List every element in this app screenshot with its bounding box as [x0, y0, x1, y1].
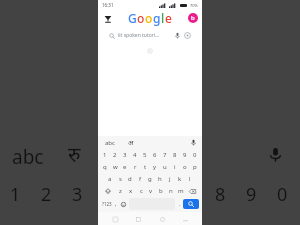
button[interactable]: 3 [120, 149, 130, 161]
button[interactable]: 6 [150, 149, 160, 161]
button[interactable]: c [136, 185, 146, 197]
staticText: 1 [10, 182, 21, 207]
button[interactable]: 7 [160, 149, 170, 161]
staticText: 4 [133, 151, 137, 159]
button[interactable]: Google Account [188, 13, 198, 23]
staticText: ?123 [102, 201, 112, 207]
button[interactable]: 0 [190, 149, 200, 161]
button[interactable]: Voice search [174, 32, 181, 39]
button[interactable]: k [175, 173, 185, 185]
button[interactable]: 1 [100, 149, 110, 161]
button[interactable]: y [150, 161, 160, 173]
button[interactable]: ?123 [101, 198, 113, 210]
staticText: c [140, 187, 143, 195]
staticText: q [103, 163, 107, 171]
button[interactable]: x [126, 185, 136, 197]
button[interactable]: g [145, 173, 155, 185]
button[interactable]: Home [156, 213, 168, 225]
button[interactable]: . [177, 198, 183, 210]
button[interactable]: h [155, 173, 165, 185]
button[interactable]: l [185, 173, 195, 185]
staticText: u [163, 163, 167, 171]
button[interactable]: 8 [170, 149, 180, 161]
staticText: 3 [72, 182, 83, 207]
button[interactable]: , [113, 198, 119, 210]
button[interactable]: b [156, 185, 166, 197]
staticText: 0 [193, 151, 197, 159]
button[interactable]: Collections [102, 13, 113, 24]
button[interactable]: iit spoken tutori... [104, 28, 196, 43]
button[interactable]: Shift [101, 185, 115, 197]
staticText: रु [68, 140, 81, 169]
button[interactable]: f [135, 173, 145, 185]
button[interactable]: 2 [110, 149, 120, 161]
staticText: p [193, 163, 197, 171]
staticText: v [149, 187, 153, 195]
staticText: a [108, 175, 112, 183]
button[interactable]: i [170, 161, 180, 173]
staticText: 0 [277, 182, 288, 207]
staticText: o [137, 10, 145, 26]
button[interactable]: 5 [140, 149, 150, 161]
button[interactable]: s [115, 173, 125, 185]
staticText: h [158, 175, 162, 183]
button[interactable]: v [146, 185, 156, 197]
button[interactable]: p [190, 161, 200, 173]
staticText: 6 [153, 151, 157, 159]
button[interactable]: j [165, 173, 175, 185]
staticText: e [123, 163, 127, 171]
staticText: x [129, 187, 133, 195]
staticText: 8 [215, 182, 226, 207]
staticText: y [153, 163, 157, 171]
staticText: , [115, 200, 117, 208]
staticText: 5 [143, 151, 147, 159]
staticText: g [153, 10, 161, 26]
button[interactable]: d [125, 173, 135, 185]
staticText: abc [105, 139, 115, 147]
staticText: 7 [163, 151, 167, 159]
button[interactable]: Google Lens [184, 32, 191, 39]
button[interactable]: a [105, 173, 115, 185]
staticText: i [174, 163, 176, 171]
button[interactable]: abc [103, 137, 117, 149]
button[interactable]: 9 [180, 149, 190, 161]
staticText: d [128, 175, 132, 183]
staticText: k [178, 175, 182, 183]
button[interactable]: Backspace [186, 185, 199, 197]
button[interactable]: o [180, 161, 190, 173]
button[interactable]: e [120, 161, 130, 173]
button[interactable]: Voice input [190, 139, 197, 146]
button[interactable]: w [110, 161, 120, 173]
staticText: j [169, 175, 171, 183]
staticText: 9 [183, 151, 187, 159]
button[interactable]: Search [183, 199, 199, 209]
button[interactable]: Recents [179, 213, 191, 225]
staticText: o [183, 163, 187, 171]
button[interactable]: अ [126, 137, 136, 149]
staticText: t [144, 163, 147, 171]
staticText: o [145, 10, 153, 26]
staticText: 1 [103, 151, 107, 159]
button[interactable]: Back [132, 213, 144, 225]
button[interactable]: q [100, 161, 110, 173]
staticText: b [159, 187, 163, 195]
button[interactable]: Keyboard [109, 213, 121, 225]
staticText: 2 [41, 182, 52, 207]
button[interactable]: m [176, 185, 186, 197]
staticText: e [165, 10, 172, 26]
staticText: iit spoken tutori... [118, 32, 174, 39]
button[interactable]: z [115, 185, 126, 197]
staticText: . [179, 200, 181, 208]
staticText: 16:31 [102, 2, 114, 8]
staticText: अ [128, 138, 134, 148]
button[interactable]: u [160, 161, 170, 173]
staticText: g [148, 175, 152, 183]
button[interactable]: n [166, 185, 176, 197]
button[interactable]: Emoji [119, 198, 127, 210]
button[interactable]: r [130, 161, 140, 173]
button[interactable]: t [140, 161, 150, 173]
staticText: n [169, 187, 173, 195]
staticText: l [161, 10, 165, 26]
button[interactable]: 4 [130, 149, 140, 161]
